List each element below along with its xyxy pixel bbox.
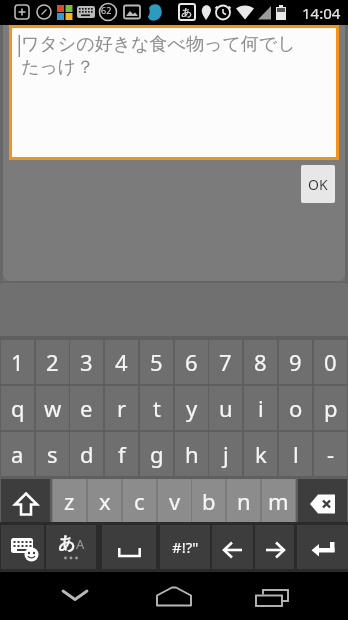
staticText: c (134, 486, 145, 516)
button[interactable] (250, 578, 290, 614)
button[interactable]: 2 (36, 340, 69, 384)
button[interactable] (1, 479, 50, 523)
button[interactable]: 0 (314, 340, 347, 384)
button[interactable]: - (314, 432, 347, 476)
button[interactable]: f (105, 432, 138, 476)
staticText: s (47, 439, 58, 469)
staticText: p (324, 393, 338, 423)
button[interactable]: 6 (175, 340, 208, 384)
button[interactable]: 3 (70, 340, 103, 384)
staticText: A (76, 535, 85, 553)
button[interactable]: i (244, 386, 277, 430)
button[interactable]: g (140, 432, 173, 476)
staticText: 14:04 (302, 3, 341, 23)
staticText: 62 (101, 4, 112, 16)
staticText: - (327, 439, 335, 469)
staticText: 9 (289, 347, 302, 377)
staticText: a (11, 439, 24, 469)
button[interactable]: o (279, 386, 312, 430)
button[interactable] (102, 525, 156, 569)
staticText: v (169, 486, 181, 516)
button[interactable]: b (192, 479, 225, 523)
staticText: z (64, 486, 75, 516)
button[interactable]: 1 (1, 340, 34, 384)
staticText: u (219, 393, 233, 423)
button[interactable]: 4 (105, 340, 138, 384)
button[interactable]: s (36, 432, 69, 476)
button[interactable]: p (314, 386, 347, 430)
staticText: f (118, 439, 126, 469)
button[interactable] (255, 525, 294, 569)
staticText: 5 (150, 347, 163, 377)
staticText: o (289, 393, 303, 423)
staticText: h (185, 439, 199, 469)
button[interactable]: r (105, 386, 138, 430)
button[interactable]: k (244, 432, 277, 476)
staticText: k (255, 439, 267, 469)
button[interactable] (298, 479, 347, 523)
button[interactable]: 9 (279, 340, 312, 384)
button[interactable]: q (1, 386, 34, 430)
button[interactable]: j (209, 432, 242, 476)
button[interactable]: 7 (209, 340, 242, 384)
button[interactable]: e (70, 386, 103, 430)
staticText: q (11, 393, 25, 423)
button[interactable]: n (227, 479, 260, 523)
button[interactable]: t (140, 386, 173, 430)
button[interactable]: h (175, 432, 208, 476)
button[interactable] (212, 525, 253, 569)
staticText: n (237, 486, 251, 516)
button[interactable]: a (1, 432, 34, 476)
staticText: m (268, 486, 289, 516)
staticText: 1 (11, 347, 24, 377)
staticText: あ (58, 533, 76, 554)
staticText: OK (308, 175, 328, 194)
staticText: w (44, 393, 62, 423)
button[interactable]: w (36, 386, 69, 430)
button[interactable]: OK (301, 165, 335, 203)
staticText: 8 (254, 347, 267, 377)
staticText: x (99, 486, 111, 516)
button[interactable]: ワタシの好きな食べ物って何でし たっけ？ (12, 28, 336, 157)
button[interactable]: l (279, 432, 312, 476)
staticText: e (80, 393, 93, 423)
button[interactable] (297, 525, 348, 569)
staticText: 6 (185, 347, 198, 377)
button[interactable]: c (123, 479, 156, 523)
button[interactable]: 5 (140, 340, 173, 384)
button[interactable]: v (158, 479, 191, 523)
button[interactable] (146, 578, 202, 614)
button[interactable] (1, 525, 44, 569)
staticText: i (258, 393, 264, 423)
button[interactable]: d (70, 432, 103, 476)
staticText: 0 (324, 347, 337, 377)
staticText: 2 (46, 347, 59, 377)
staticText: l (293, 439, 299, 469)
button[interactable]: x (88, 479, 121, 523)
staticText: あ (181, 5, 193, 19)
button[interactable]: あ (46, 525, 96, 569)
staticText: y (186, 393, 198, 423)
staticText: 4 (115, 347, 128, 377)
staticText: j (223, 439, 229, 469)
button[interactable]: z (53, 479, 86, 523)
staticText: ワタシの好きな食べ物って何でし たっけ？ (21, 33, 296, 79)
staticText: 7 (219, 347, 232, 377)
button[interactable] (55, 578, 95, 614)
staticText: 3 (80, 347, 93, 377)
button[interactable]: 8 (244, 340, 277, 384)
button[interactable]: y (175, 386, 208, 430)
staticText: t (153, 393, 161, 423)
staticText: g (150, 439, 164, 469)
staticText: #!?" (172, 537, 199, 557)
staticText: d (80, 439, 94, 469)
staticText: r (117, 393, 127, 423)
staticText: b (202, 486, 216, 516)
button[interactable]: m (262, 479, 295, 523)
button[interactable]: #!?" (160, 525, 210, 569)
button[interactable]: u (209, 386, 242, 430)
